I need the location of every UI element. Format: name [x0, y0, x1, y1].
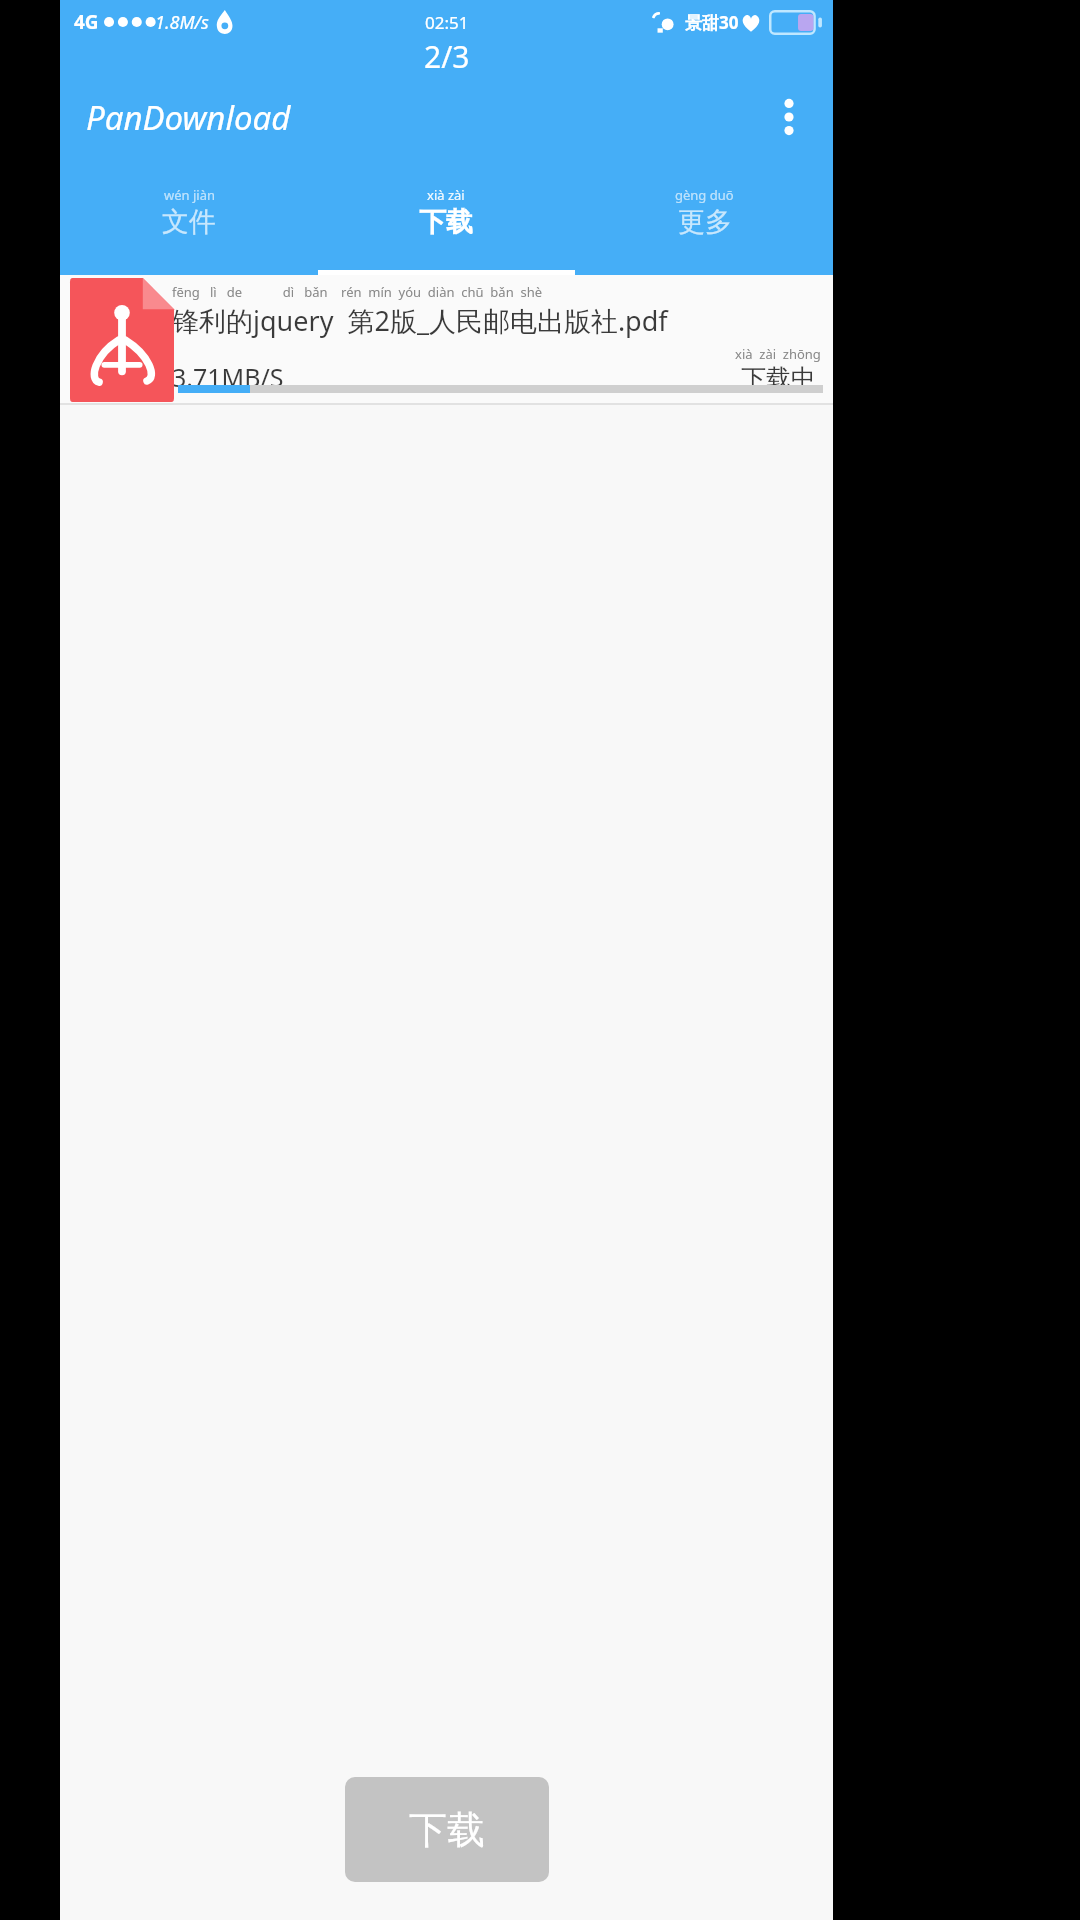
staticText: 文件 [162, 205, 216, 239]
staticText: 4G [74, 9, 99, 35]
button[interactable]: 下载 [345, 1777, 549, 1882]
staticText: 2/3 [424, 36, 470, 77]
staticText: wén jiàn [164, 186, 215, 204]
staticText: 02:51 [425, 11, 469, 34]
button[interactable]: More options [761, 89, 817, 145]
staticText: 下载中 [741, 363, 816, 394]
staticText: 1.8M/s [155, 10, 209, 35]
staticText: 更多 [678, 205, 732, 239]
button[interactable]: xià zài [317, 166, 575, 275]
staticText: 3.71MB/S [172, 360, 284, 394]
staticText: fēng lì de dì bǎn rén mín yóu diàn chū b… [172, 283, 543, 301]
staticText: 下载 [419, 205, 473, 239]
button[interactable]: wén jiàn [60, 166, 317, 275]
staticText: PanDownload [86, 95, 291, 140]
staticText: 景甜30 [685, 11, 739, 34]
staticText: xià zài zhōng [735, 345, 821, 363]
button[interactable]: fēng lì de dì bǎn rén mín yóu diàn chū b… [60, 275, 833, 405]
staticText: 下载 [409, 1806, 485, 1854]
staticText: 锋利的jquery 第2版_人民邮电出版社.pdf [172, 302, 668, 339]
staticText: xià zài [427, 186, 465, 204]
staticText: gèng duō [675, 186, 734, 204]
button[interactable]: gèng duō [575, 166, 833, 275]
